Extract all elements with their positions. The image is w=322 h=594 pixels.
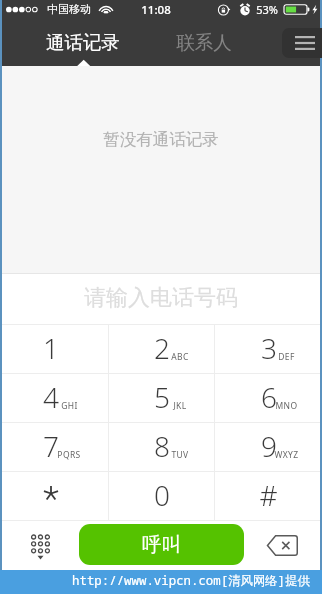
button[interactable]: 0 xyxy=(109,472,214,520)
button[interactable]: Keypad xyxy=(2,521,79,570)
button[interactable]: 1 xyxy=(2,325,108,373)
staticText: 9 xyxy=(261,427,277,465)
staticText: 53% xyxy=(256,2,278,17)
staticText: 通话记录 xyxy=(46,31,120,54)
staticText: 请输入电话号码 xyxy=(84,284,238,312)
button[interactable]: 呼叫 xyxy=(79,524,244,565)
button[interactable]: 联系人 xyxy=(149,18,259,66)
button[interactable]: Menu xyxy=(282,28,322,58)
staticText: 11:08 xyxy=(141,2,171,18)
staticText: MNO xyxy=(275,400,298,412)
staticText: 4 xyxy=(43,378,59,416)
button[interactable]: 3 xyxy=(215,325,320,373)
staticText: DEF xyxy=(278,351,295,363)
staticText: 暂没有通话记录 xyxy=(103,129,219,150)
staticText: 1 xyxy=(43,329,59,367)
staticText: 7 xyxy=(43,427,59,465)
staticText: TUV xyxy=(171,449,189,461)
staticText: JKL xyxy=(173,400,187,412)
button[interactable]: 通话记录 xyxy=(23,18,143,66)
button[interactable]: 7 xyxy=(2,423,108,471)
staticText: PQRS xyxy=(57,449,81,461)
button[interactable]: 4 xyxy=(2,374,108,422)
button[interactable]: 9 xyxy=(215,423,320,471)
button[interactable] xyxy=(2,472,108,520)
button[interactable]: 5 xyxy=(109,374,214,422)
button[interactable]: 2 xyxy=(109,325,214,373)
staticText: 2 xyxy=(154,329,170,367)
staticText: WXYZ xyxy=(274,449,299,461)
button[interactable]: 6 xyxy=(215,374,320,422)
staticText: 0 xyxy=(154,476,170,514)
button[interactable]: # xyxy=(215,472,320,520)
button[interactable]: Delete xyxy=(244,521,320,570)
button[interactable]: 8 xyxy=(109,423,214,471)
staticText: 联系人 xyxy=(176,31,232,54)
staticText: ABC xyxy=(171,351,189,363)
staticText: 8 xyxy=(154,427,170,465)
staticText: 5 xyxy=(154,378,170,416)
staticText: GHI xyxy=(61,400,78,412)
staticText: # xyxy=(259,476,278,514)
staticText: 呼叫 xyxy=(142,532,181,557)
staticText: 6 xyxy=(261,378,277,416)
staticText: 中国移动 xyxy=(47,2,91,16)
staticText: 3 xyxy=(261,329,277,367)
staticText: http://www.vipcn.com[清风网络]提供 xyxy=(72,572,310,589)
